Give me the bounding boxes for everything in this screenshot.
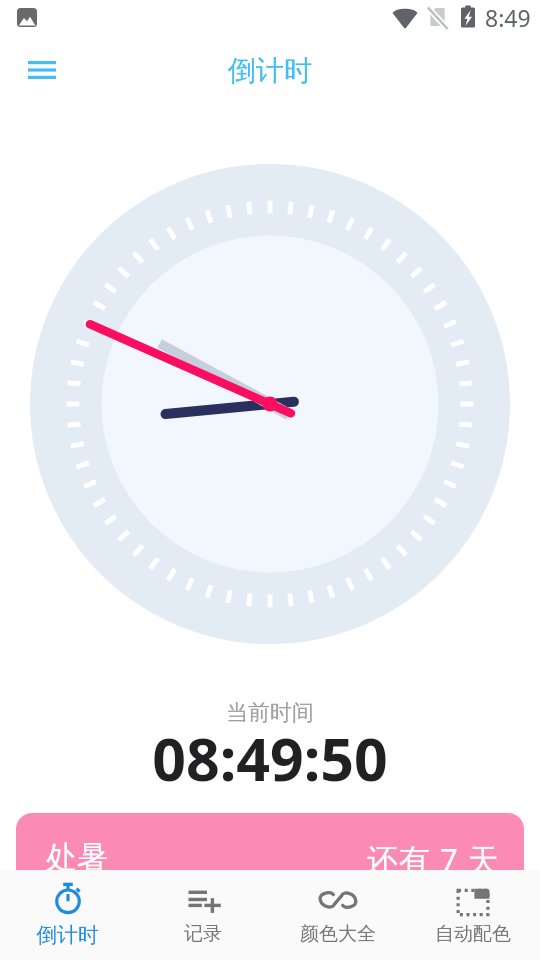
button[interactable]: 自动配色 bbox=[405, 871, 540, 960]
button[interactable]: Menu bbox=[18, 46, 66, 94]
button[interactable]: 处暑 bbox=[16, 813, 524, 933]
staticText: 记录 bbox=[184, 922, 222, 946]
button[interactable]: 倒计时 bbox=[0, 871, 135, 960]
staticText: 自动配色 bbox=[435, 922, 511, 946]
staticText: 当前时间 bbox=[0, 699, 540, 727]
staticText: 颜色大全 bbox=[300, 922, 376, 946]
staticText: 还有 7 天 bbox=[367, 838, 500, 880]
button[interactable]: 颜色大全 bbox=[270, 871, 405, 960]
staticText: 处暑 bbox=[46, 838, 108, 877]
staticText: 8:49 bbox=[485, 2, 531, 33]
staticText: 08:49:50 bbox=[0, 718, 540, 798]
button[interactable]: 记录 bbox=[135, 871, 270, 960]
staticText: 倒计时 bbox=[228, 53, 312, 88]
staticText: 倒计时 bbox=[36, 922, 99, 948]
